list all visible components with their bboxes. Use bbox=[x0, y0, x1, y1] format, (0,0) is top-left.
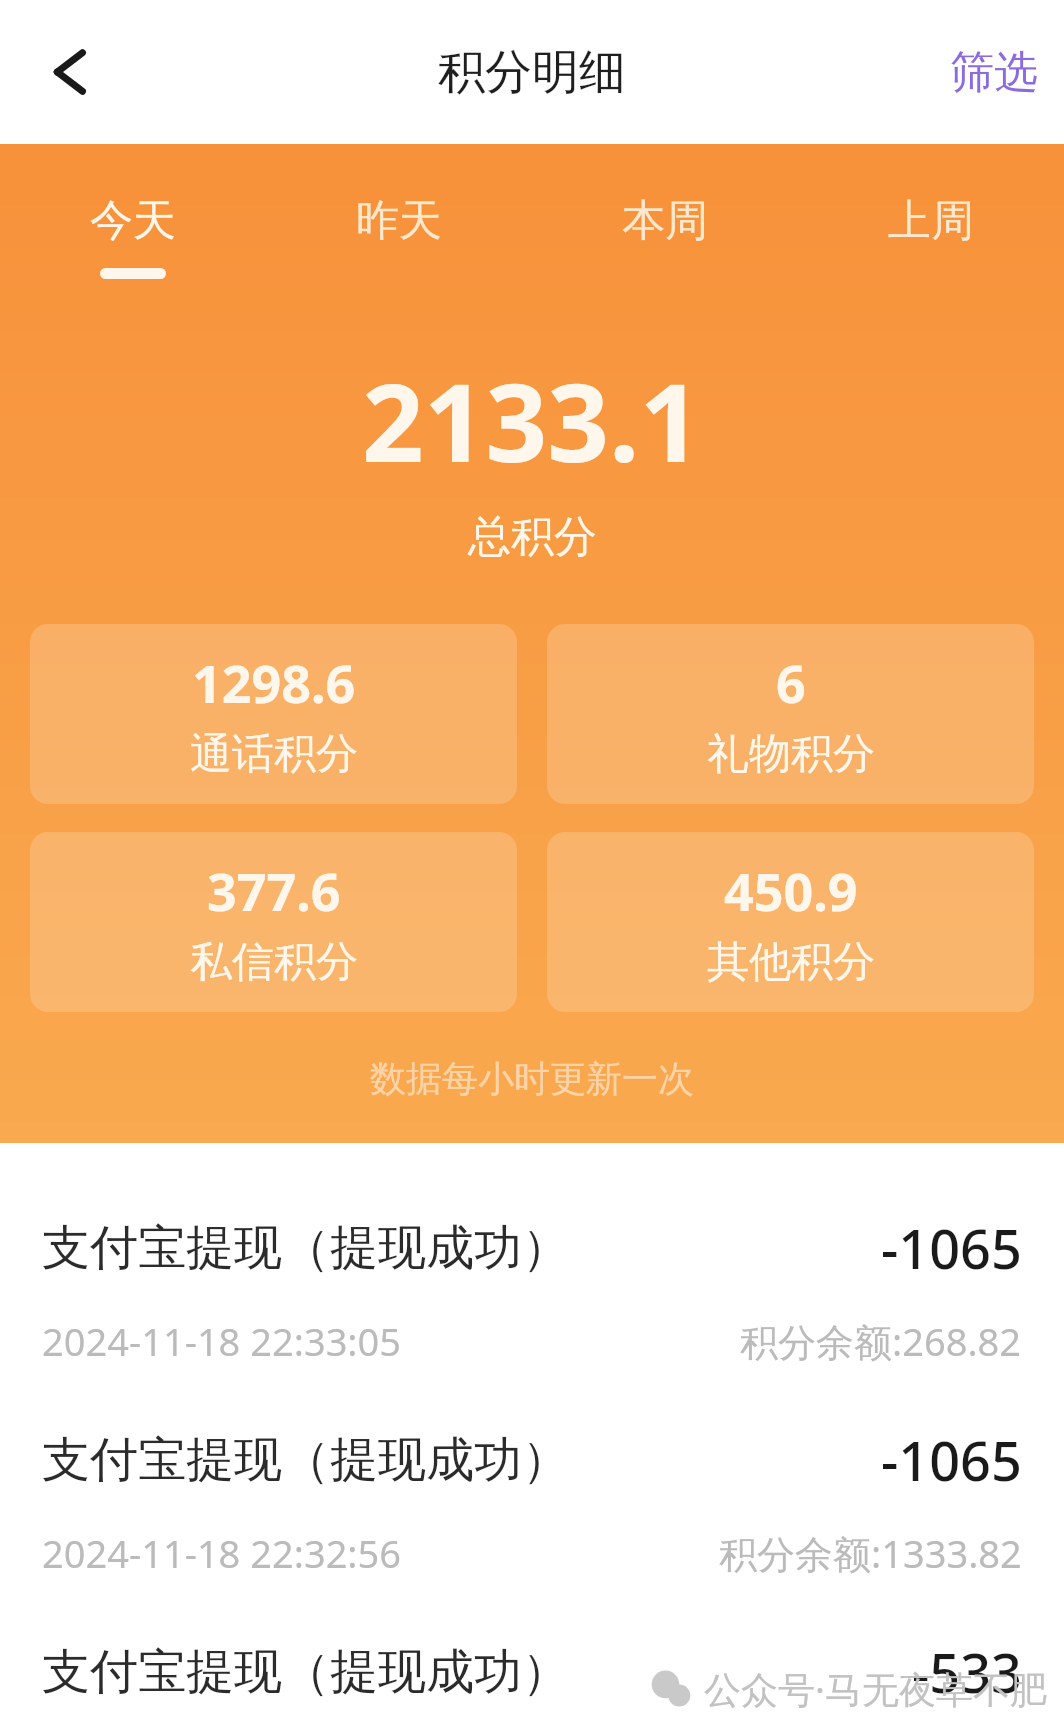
staticText: 筛选 bbox=[950, 45, 1038, 100]
staticText: 支付宝提现（提现成功） bbox=[42, 1218, 570, 1278]
staticText: 公众号·马无夜草不肥 bbox=[704, 1663, 1047, 1714]
staticText: 通话积分 bbox=[190, 728, 358, 781]
staticText: 2133.1 bbox=[362, 347, 702, 494]
staticText: 2024-11-18 22:33:05 bbox=[42, 1315, 402, 1367]
staticText: 私信积分 bbox=[190, 936, 358, 989]
staticText: 礼物积分 bbox=[707, 728, 875, 781]
staticText: 450.9 bbox=[724, 855, 858, 926]
button[interactable]: 昨天 bbox=[266, 194, 532, 279]
staticText: 上周 bbox=[888, 194, 974, 248]
button[interactable]: Back bbox=[22, 30, 106, 114]
button[interactable]: 450.9 bbox=[547, 832, 1034, 1012]
button[interactable]: 今天 bbox=[0, 194, 266, 279]
staticText: 数据每小时更新一次 bbox=[370, 1056, 694, 1101]
staticText: 今天 bbox=[90, 194, 176, 248]
button[interactable]: 本周 bbox=[532, 194, 798, 279]
staticText: 其他积分 bbox=[707, 936, 875, 989]
staticText: 本周 bbox=[622, 194, 708, 248]
staticText: 积分余额:1333.82 bbox=[719, 1527, 1022, 1579]
staticText: -1065 bbox=[881, 1211, 1022, 1285]
staticText: 昨天 bbox=[356, 194, 442, 248]
staticText: -1065 bbox=[881, 1423, 1022, 1497]
staticText: 1298.6 bbox=[192, 647, 356, 718]
button[interactable]: 筛选 bbox=[924, 31, 1064, 114]
button[interactable]: 上周 bbox=[798, 194, 1064, 279]
button[interactable]: 支付宝提现（提现成功） bbox=[0, 1607, 1064, 1736]
button[interactable]: 支付宝提现（提现成功） bbox=[0, 1183, 1064, 1395]
staticText: 支付宝提现（提现成功） bbox=[42, 1430, 570, 1490]
button[interactable]: 6 bbox=[547, 624, 1034, 804]
staticText: 6 bbox=[776, 647, 806, 718]
staticText: -533 bbox=[912, 1635, 1022, 1708]
staticText: 总积分 bbox=[468, 510, 597, 564]
staticText: 积分明细 bbox=[438, 43, 626, 102]
button[interactable]: 377.6 bbox=[30, 832, 517, 1012]
staticText: 2024-11-18 22:32:56 bbox=[42, 1527, 402, 1579]
staticText: 支付宝提现（提现成功） bbox=[42, 1642, 570, 1702]
staticText: 377.6 bbox=[207, 855, 341, 926]
button[interactable]: 支付宝提现（提现成功） bbox=[0, 1395, 1064, 1607]
button[interactable]: 1298.6 bbox=[30, 624, 517, 804]
staticText: 积分余额:268.82 bbox=[740, 1315, 1022, 1367]
